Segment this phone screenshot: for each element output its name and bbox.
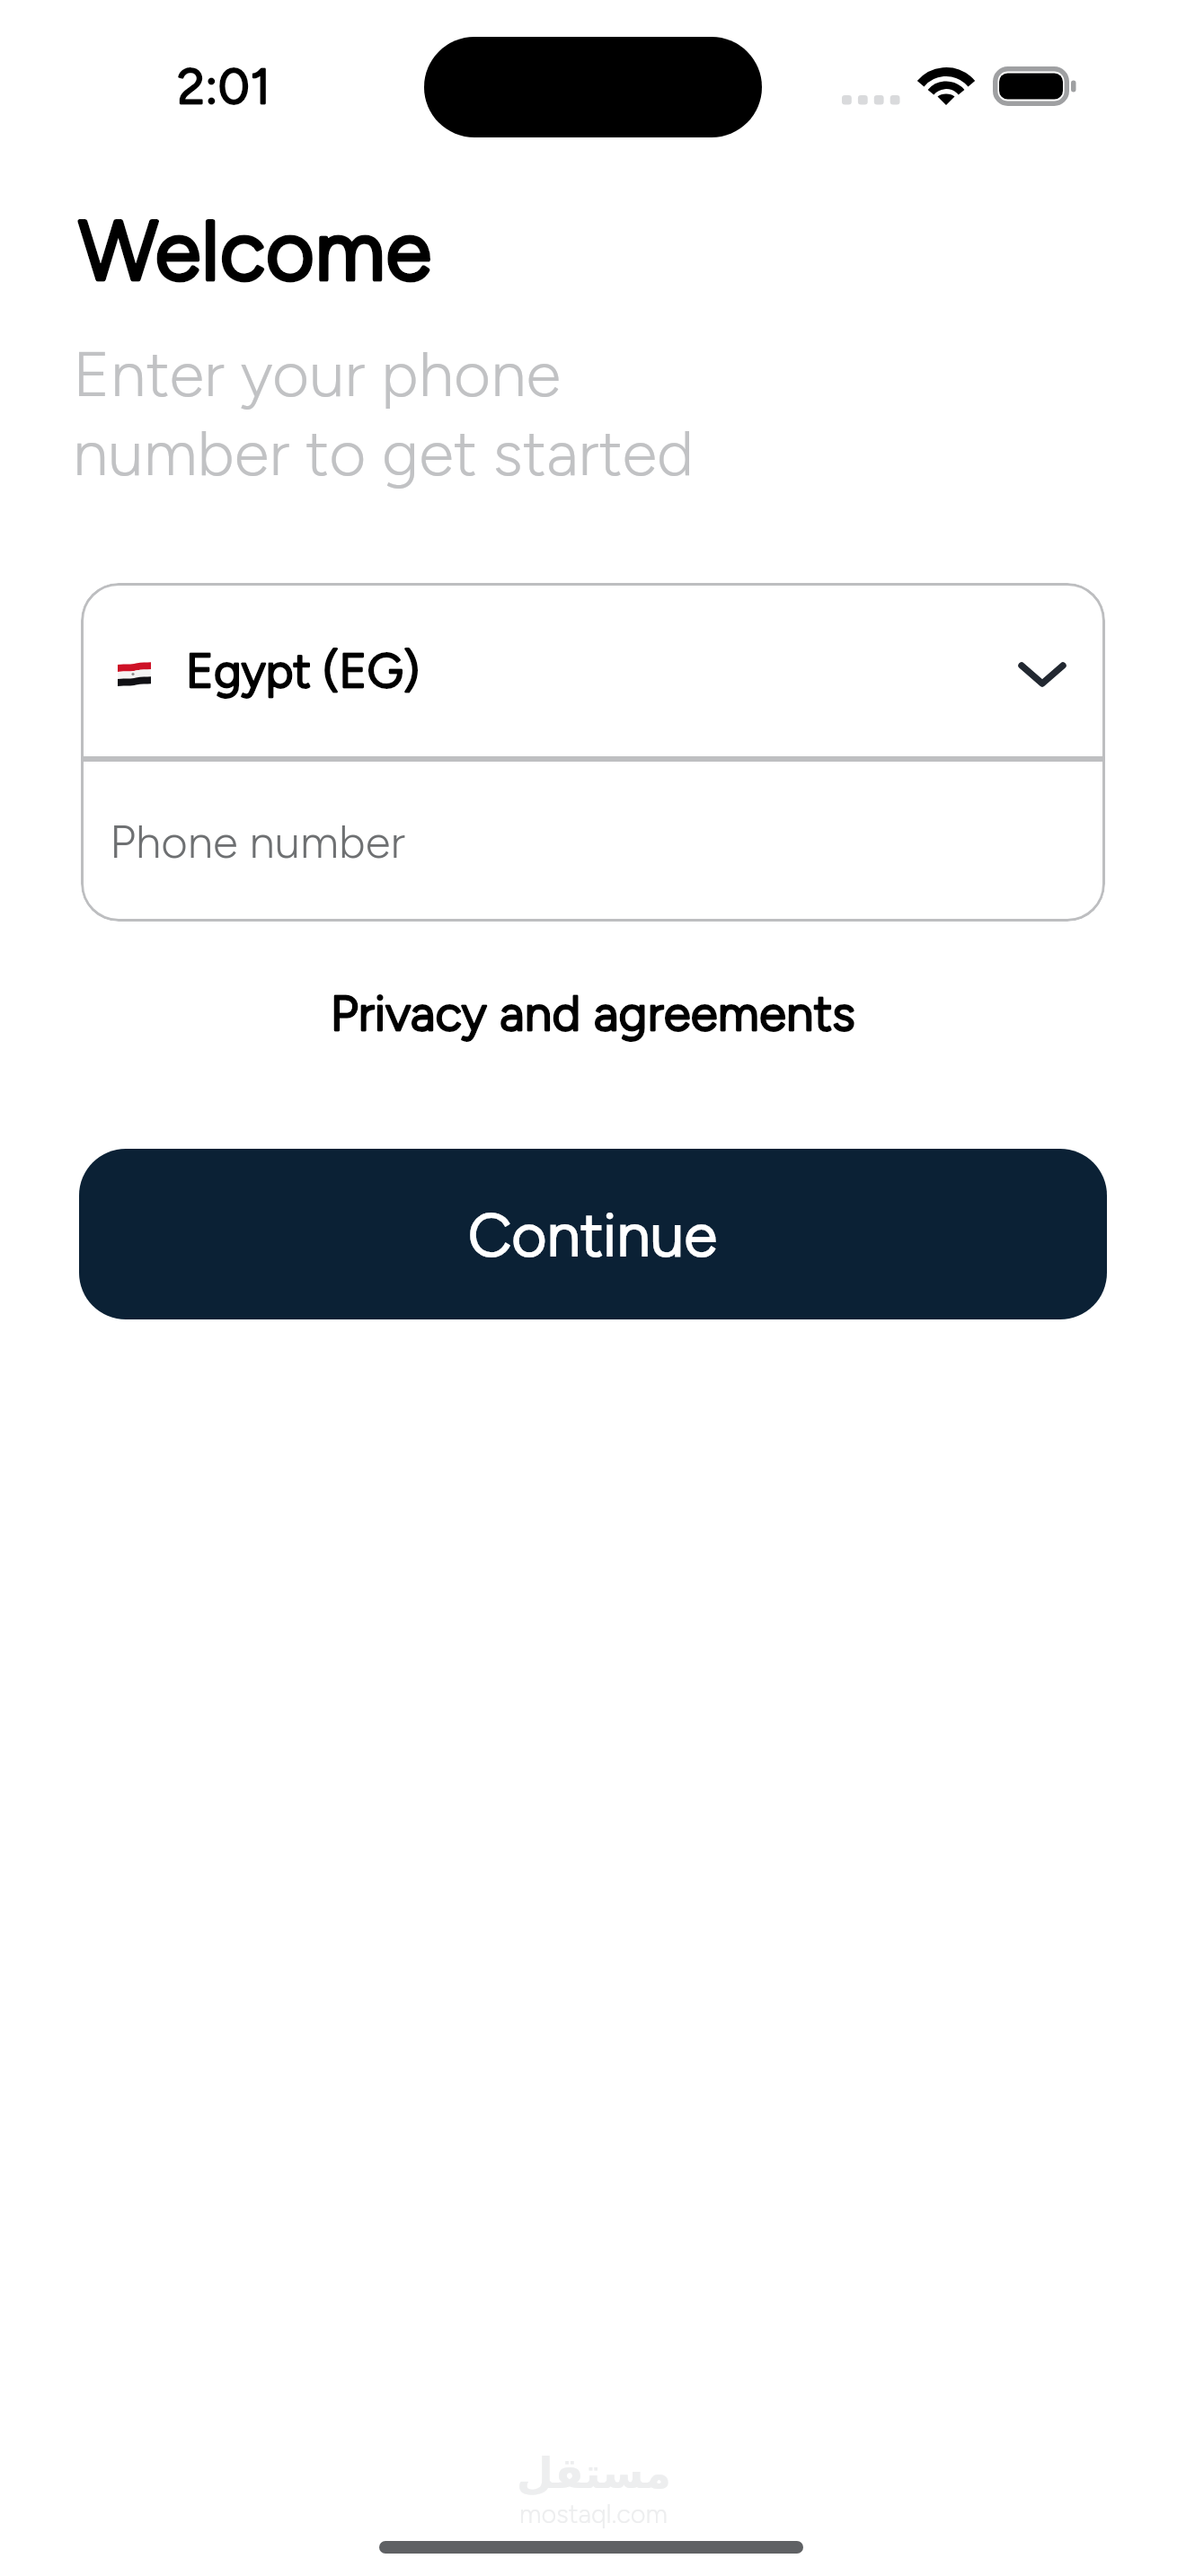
other: Wi-Fi — [920, 66, 972, 105]
staticText: Privacy and agreements — [0, 984, 1186, 1043]
staticText: Continue — [468, 1198, 718, 1270]
button[interactable]: Phone number — [81, 762, 1105, 922]
staticText: Privacy and agreements — [0, 984, 1186, 1043]
staticText: Egypt (EG) — [186, 643, 420, 699]
staticText: Welcome — [79, 201, 433, 300]
staticText: 2:01 — [178, 57, 272, 116]
staticText: Enter your phone number to get started — [73, 336, 695, 491]
staticText: Phone number — [110, 815, 405, 869]
staticText: mostaql.com — [519, 2498, 668, 2529]
button[interactable]: Privacy and agreements — [0, 984, 1186, 1043]
staticText: 2:01 — [178, 57, 272, 116]
other: Battery — [993, 66, 1076, 106]
staticText: Egypt (EG) — [186, 643, 420, 699]
button[interactable]: Continue — [79, 1149, 1107, 1319]
button[interactable]: Egypt (EG) — [81, 583, 1105, 756]
other: Select country — [1018, 662, 1067, 687]
staticText: Welcome — [79, 201, 433, 300]
staticText: مستقل — [517, 2448, 671, 2498]
